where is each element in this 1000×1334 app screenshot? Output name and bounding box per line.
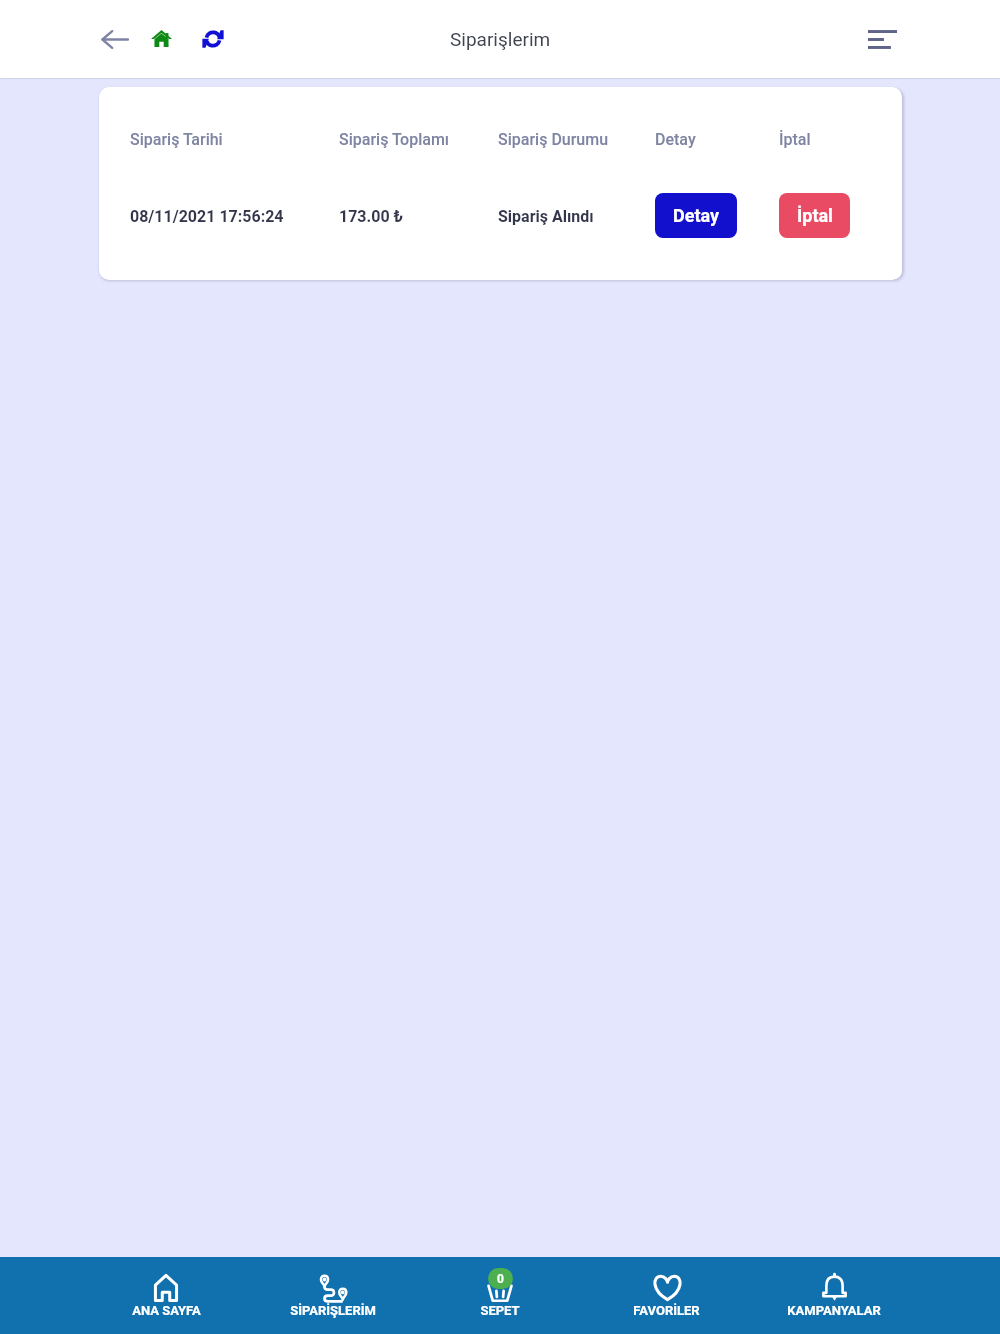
staticText: SİPARİŞLERİM — [290, 1303, 376, 1318]
staticText: Sipariş Tarihi — [130, 130, 223, 149]
button[interactable]: Back — [87, 11, 143, 67]
button[interactable]: Menu — [853, 11, 911, 67]
button[interactable]: KAMPANYALAR — [750, 1257, 917, 1334]
staticText: FAVORİLER — [633, 1303, 700, 1318]
staticText: Sipariş Durumu — [498, 130, 609, 149]
button[interactable]: FAVORİLER — [583, 1257, 750, 1334]
staticText: Detay — [673, 205, 720, 226]
button[interactable]: 0 — [416, 1257, 583, 1334]
button[interactable]: SİPARİŞLERİM — [249, 1257, 416, 1334]
staticText: ANA SAYFA — [132, 1303, 201, 1318]
staticText: KAMPANYALAR — [787, 1303, 881, 1318]
button[interactable]: İptal — [779, 193, 850, 238]
staticText: İptal — [779, 130, 811, 149]
staticText: İptal — [797, 205, 833, 226]
staticText: 0 — [497, 1272, 504, 1286]
button[interactable]: Refresh — [187, 11, 239, 67]
button[interactable]: Detay — [655, 193, 737, 238]
button[interactable]: Home — [135, 10, 187, 66]
staticText: Sipariş Toplamı — [339, 130, 450, 149]
staticText: 08/11/2021 17:56:24 — [130, 207, 284, 226]
button[interactable]: ANA SAYFA — [83, 1257, 249, 1334]
staticText: Siparişlerim — [450, 28, 551, 50]
staticText: 173.00 ₺ — [339, 207, 404, 226]
staticText: Sipariş Alındı — [498, 207, 594, 226]
staticText: SEPET — [480, 1303, 520, 1318]
staticText: Detay — [655, 130, 696, 149]
